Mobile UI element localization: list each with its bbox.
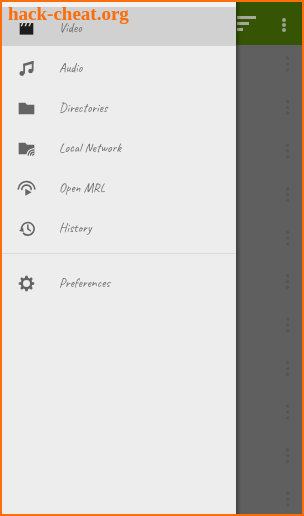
button[interactable]: More options — [282, 18, 286, 32]
button[interactable] — [2, 260, 302, 303]
button[interactable] — [2, 217, 302, 260]
staticText: Open MRL — [59, 180, 106, 196]
button[interactable] — [2, 174, 302, 217]
staticText: Local Network — [59, 140, 121, 156]
staticText: History — [59, 220, 92, 236]
staticText: Video — [59, 20, 82, 36]
button[interactable]: History — [2, 208, 236, 248]
button[interactable] — [2, 389, 302, 432]
button[interactable]: Open navigation drawer — [237, 16, 256, 31]
button[interactable] — [2, 88, 302, 131]
button[interactable]: Video — [2, 7, 236, 46]
button[interactable] — [2, 432, 302, 475]
staticText: Audio — [59, 60, 83, 76]
button[interactable]: Directories — [2, 88, 236, 128]
button[interactable] — [2, 346, 302, 389]
button[interactable]: Preferences — [2, 263, 236, 303]
button[interactable] — [2, 475, 302, 514]
button[interactable] — [2, 45, 302, 88]
staticText: Directories — [59, 100, 108, 116]
staticText: hack-cheat.org — [8, 3, 129, 24]
button[interactable] — [2, 131, 302, 174]
button[interactable] — [2, 303, 302, 346]
button[interactable]: Open MRL — [2, 168, 236, 208]
staticText: Preferences — [59, 275, 110, 291]
button[interactable]: Local Network — [2, 128, 236, 168]
button[interactable]: Audio — [2, 48, 236, 88]
